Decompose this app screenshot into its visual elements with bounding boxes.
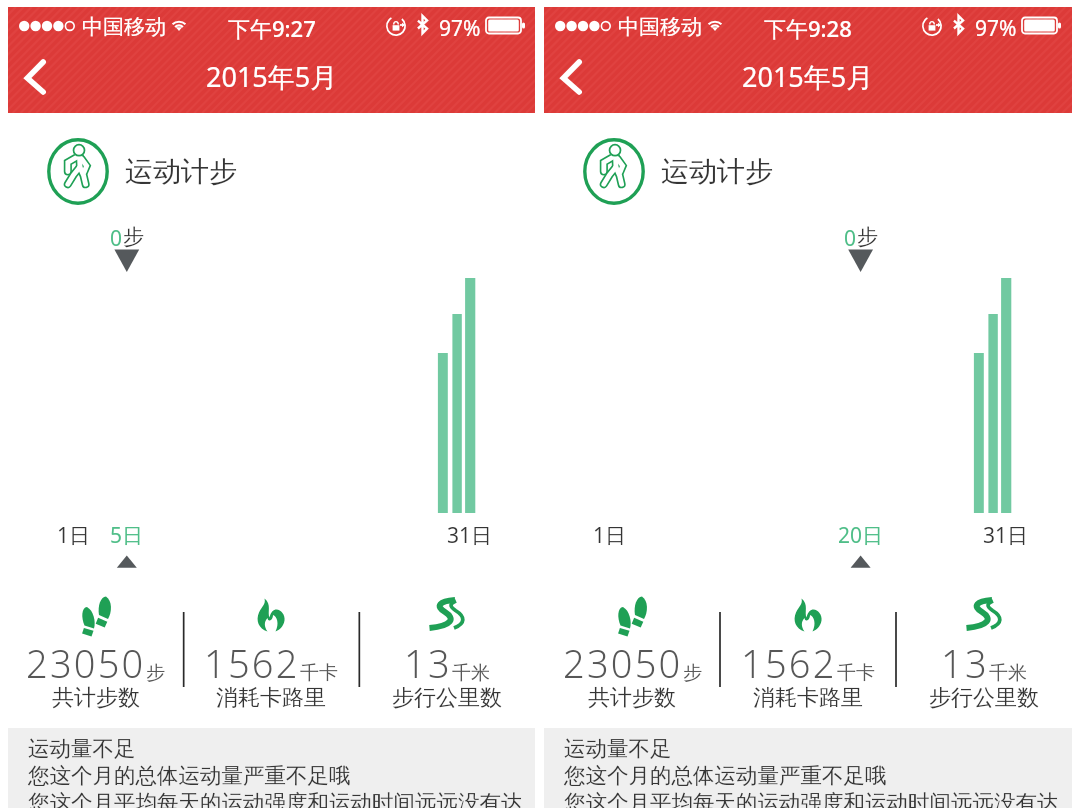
staticText: 千卡 [837,661,875,685]
button[interactable]: 13 [896,593,1072,715]
button[interactable]: 1562 [720,593,896,715]
staticText: 1562 [204,637,300,689]
staticText: 步 [683,661,702,685]
staticText: 5日 [110,521,144,550]
staticText: 2015年5月 [206,58,338,95]
staticText: 运动量不足 [28,735,136,762]
staticText: 20日 [838,521,884,550]
staticText: 运动计步 [661,154,773,189]
staticText: 下午9:28 [764,13,852,43]
staticText: 23050 [26,637,146,689]
staticText: 2015年5月 [742,58,874,95]
staticText: 0 [844,224,857,253]
button[interactable]: 23050 [544,593,720,715]
staticText: 步 [123,224,144,250]
staticText: 千米 [989,661,1027,685]
staticText: 中国移动 [618,14,702,40]
staticText: 13 [404,637,452,689]
staticText: 您这个月平均每天的运动强度和运动时间远远没有达 [28,789,523,808]
staticText: 1日 [57,521,91,550]
staticText: 共计步数 [588,684,676,712]
staticText: 您这个月的总体运动量严重不足哦 [564,762,887,789]
button[interactable]: 1562 [183,593,359,715]
staticText: 步行公里数 [392,684,502,712]
staticText: 步 [146,661,165,685]
staticText: 1562 [741,637,837,689]
staticText: 1日 [593,521,627,550]
staticText: 0 [110,224,123,253]
staticText: 运动计步 [125,154,237,189]
staticText: 您这个月的总体运动量严重不足哦 [28,762,351,789]
staticText: 97% [439,14,481,43]
button[interactable]: Back [547,46,605,111]
staticText: 23050 [563,637,683,689]
staticText: 消耗卡路里 [753,684,863,712]
button[interactable]: 运动计步 [583,138,773,205]
button[interactable]: 13 [359,593,535,715]
staticText: 您这个月平均每天的运动强度和运动时间远远没有达 [564,789,1059,808]
staticText: 千米 [452,661,490,685]
staticText: 31日 [983,521,1029,550]
staticText: 13 [941,637,989,689]
button[interactable]: 运动计步 [47,138,237,205]
button[interactable]: 23050 [8,593,183,715]
staticText: 消耗卡路里 [216,684,326,712]
staticText: 下午9:27 [228,13,316,43]
staticText: 中国移动 [82,14,166,40]
staticText: 步行公里数 [929,684,1039,712]
staticText: 步 [857,224,878,250]
staticText: 千卡 [300,661,338,685]
staticText: 共计步数 [52,684,140,712]
staticText: 31日 [447,521,493,550]
staticText: 97% [975,14,1017,43]
button[interactable]: Back [11,46,69,111]
staticText: 运动量不足 [564,735,672,762]
